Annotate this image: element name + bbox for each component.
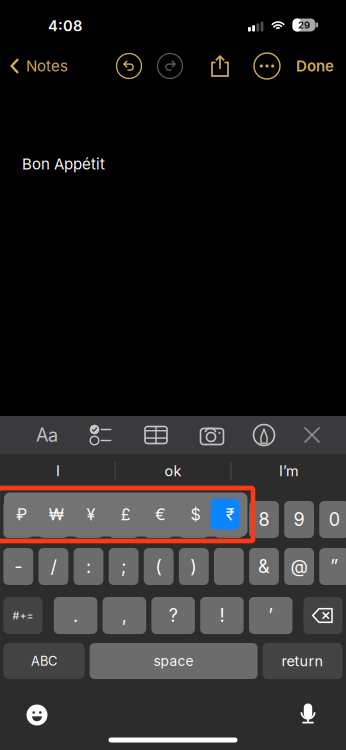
staticText: #+= <box>12 609 33 622</box>
staticText: ¥ <box>86 505 95 524</box>
button[interactable]: ; <box>109 548 138 585</box>
button[interactable]: , <box>103 597 146 634</box>
button[interactable]: return <box>262 643 342 679</box>
button[interactable]: 8 <box>249 501 279 538</box>
staticText: Aa <box>36 424 58 446</box>
button[interactable]: Camera <box>190 416 234 454</box>
button[interactable]: Notes <box>10 46 96 86</box>
staticText: : <box>86 556 91 577</box>
staticText: I <box>56 462 60 480</box>
staticText: 1 <box>15 509 22 530</box>
button[interactable]: Checklist <box>79 416 123 454</box>
button[interactable]: ₹ <box>213 492 248 536</box>
staticText: 7 <box>224 509 234 530</box>
button[interactable]: 7 <box>214 501 244 538</box>
button[interactable]: ? <box>151 597 195 634</box>
button[interactable]: 4 <box>109 501 138 538</box>
button[interactable]: ’ <box>249 597 292 634</box>
button[interactable]: Redo <box>150 46 190 86</box>
staticText: ( <box>155 556 162 577</box>
staticText: 0 <box>329 509 340 530</box>
button[interactable]: . <box>54 597 97 634</box>
button[interactable]: @ <box>284 548 314 585</box>
button[interactable]: : <box>74 548 103 585</box>
staticText: ok <box>164 462 181 480</box>
staticText: ! <box>219 605 224 626</box>
button[interactable]: Table <box>134 416 178 454</box>
staticText: ” <box>330 556 338 577</box>
staticText: ; <box>121 556 126 577</box>
button[interactable]: More <box>247 46 287 86</box>
button[interactable]: ( <box>144 548 174 585</box>
button[interactable]: Close keyboard <box>290 416 334 454</box>
staticText: € <box>155 505 166 524</box>
staticText: Bon Appétit <box>22 155 105 173</box>
staticText: ) <box>190 556 197 577</box>
button[interactable]: Undo <box>109 46 149 86</box>
button[interactable]: ” <box>319 548 346 585</box>
staticText: 5 <box>153 509 164 530</box>
button[interactable]: Share <box>200 46 240 86</box>
staticText: return <box>281 652 323 670</box>
button[interactable]: ABC <box>3 643 84 679</box>
staticText: I’m <box>279 462 299 480</box>
button[interactable]: Markup <box>242 416 286 454</box>
staticText: £ <box>121 505 131 524</box>
button[interactable]: $ <box>178 492 213 536</box>
button[interactable]: 0 <box>319 501 346 538</box>
button[interactable]: #+= <box>3 597 42 634</box>
staticText: / <box>50 556 56 577</box>
button[interactable]: £ <box>108 492 143 536</box>
staticText: 6 <box>188 509 199 530</box>
button[interactable]: Dollar <box>214 548 244 585</box>
staticText: ₹ <box>226 505 235 524</box>
staticText: 29 <box>298 19 310 31</box>
button[interactable]: & <box>249 548 279 585</box>
staticText: 3 <box>83 509 94 530</box>
button[interactable]: ) <box>179 548 209 585</box>
button[interactable]: ! <box>200 597 244 634</box>
button[interactable]: Done <box>287 46 343 86</box>
button[interactable]: ₩ <box>39 492 74 536</box>
button[interactable]: 6 <box>179 501 209 538</box>
staticText: Notes <box>26 57 68 75</box>
button[interactable]: I <box>2 455 114 487</box>
button[interactable]: - <box>3 548 33 585</box>
button[interactable]: Emoji <box>17 695 57 735</box>
button[interactable]: space <box>90 643 258 679</box>
button[interactable]: Dictation <box>288 694 328 734</box>
staticText: space <box>154 653 194 669</box>
staticText: Done <box>296 57 334 75</box>
staticText: ₩ <box>49 505 64 524</box>
staticText: 4:08 <box>48 17 82 35</box>
button[interactable]: ₽ <box>4 492 39 536</box>
staticText: , <box>122 605 127 626</box>
button[interactable]: 1 <box>3 501 33 538</box>
button[interactable]: 9 <box>284 501 314 538</box>
button[interactable]: I’m <box>233 455 345 487</box>
button[interactable]: Delete <box>303 597 342 634</box>
staticText: @ <box>291 556 308 577</box>
staticText: ABC <box>31 653 57 669</box>
button[interactable]: / <box>38 548 68 585</box>
staticText: - <box>14 556 22 577</box>
staticText: 4 <box>118 509 130 530</box>
staticText: ’ <box>268 605 273 626</box>
staticText: 2 <box>48 509 59 530</box>
staticText: . <box>73 605 78 626</box>
button[interactable]: 5 <box>144 501 174 538</box>
staticText: & <box>258 556 270 577</box>
staticText: 8 <box>258 509 269 530</box>
staticText: $ <box>190 505 200 524</box>
button[interactable]: 3 <box>74 501 103 538</box>
button[interactable]: ok <box>117 455 229 487</box>
staticText: ? <box>169 605 178 626</box>
staticText: 9 <box>294 509 305 530</box>
button[interactable]: ¥ <box>74 492 108 536</box>
staticText: ₽ <box>16 505 27 524</box>
button[interactable]: 2 <box>38 501 68 538</box>
button[interactable]: Format <box>25 416 69 454</box>
button[interactable]: € <box>143 492 178 536</box>
